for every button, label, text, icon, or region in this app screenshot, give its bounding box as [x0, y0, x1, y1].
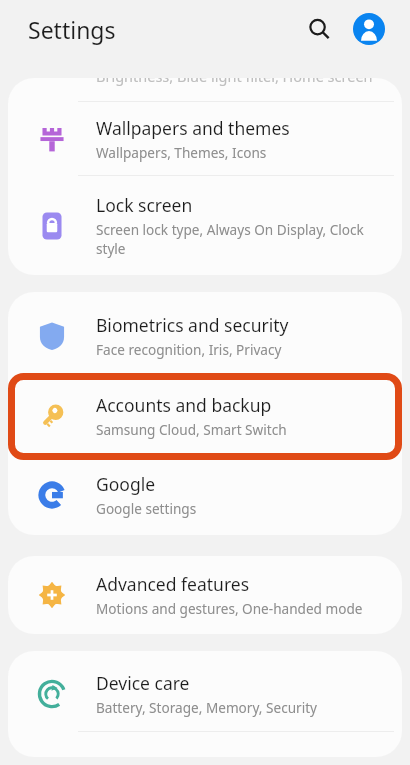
staticText: Screen lock type, Always On Display, Clo…: [96, 220, 364, 258]
button[interactable]: Advanced features: [8, 558, 402, 632]
staticText: Face recognition, Iris, Privacy: [96, 340, 282, 359]
staticText: Wallpapers and themes: [96, 116, 290, 140]
staticText: Samsung Cloud, Smart Switch: [96, 420, 287, 439]
button[interactable]: Wallpapers and themes: [8, 102, 402, 176]
staticText: Accounts and backup: [96, 393, 272, 417]
button[interactable]: Device care: [8, 655, 402, 732]
button[interactable]: Accounts and backup: [8, 373, 402, 458]
staticText: Lock screen: [96, 193, 193, 217]
button[interactable]: Biometrics and security: [8, 298, 402, 373]
staticText: Google settings: [96, 499, 197, 518]
staticText: Settings: [28, 14, 116, 45]
staticText: Device care: [96, 671, 190, 695]
staticText: Wallpapers, Themes, Icons: [96, 143, 267, 162]
button[interactable]: Search: [300, 10, 338, 48]
staticText: Motions and gestures, One-handed mode: [96, 599, 363, 618]
button[interactable]: Google: [8, 458, 402, 531]
button[interactable]: Lock screen: [8, 176, 402, 275]
other: Accounts and backup, selected: [8, 373, 402, 460]
staticText: Advanced features: [96, 572, 250, 596]
staticText: Google: [96, 472, 156, 496]
staticText: Battery, Storage, Memory, Security: [96, 698, 318, 717]
staticText: Biometrics and security: [96, 313, 289, 337]
button[interactable]: Samsung account: [353, 13, 385, 45]
staticText: Brightness, Blue light filter, Home scre…: [96, 78, 373, 86]
